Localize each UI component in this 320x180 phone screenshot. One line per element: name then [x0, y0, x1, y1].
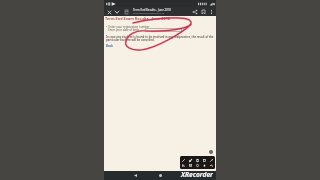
button[interactable]: More options: [207, 8, 215, 16]
button[interactable]: [145, 28, 182, 32]
button[interactable]: Back: [130, 171, 140, 180]
staticText: Enter your date of birth: [106, 28, 139, 32]
button[interactable]: Home: [155, 171, 165, 180]
button[interactable]: Highlighter: [188, 158, 193, 163]
button[interactable]: Recorder handle: [209, 150, 213, 154]
button[interactable]: Arrow: [209, 158, 214, 163]
button[interactable]: Pen: [181, 158, 186, 163]
button[interactable]: Circle: [195, 163, 200, 167]
staticText: examresults@university.ac.in: [133, 12, 165, 15]
button[interactable]: Rectangle: [195, 158, 200, 163]
staticText: In case any student is found to be invol…: [106, 35, 214, 42]
staticText: • Enter your registration number: [106, 25, 150, 29]
button[interactable]: Archive: [122, 8, 130, 16]
button[interactable]: Bookmark: [199, 8, 207, 16]
staticText: XRecorder: [181, 170, 213, 179]
staticText: Back: [106, 44, 114, 48]
button[interactable]: Fill: [202, 163, 207, 167]
button[interactable]: Back: [106, 44, 114, 48]
button[interactable]: Undo: [209, 163, 214, 167]
staticText: Term End Exam Results - June 2018: [105, 16, 170, 21]
button[interactable]: Expand: [113, 8, 121, 16]
staticText: Term End Results - June 2018: [133, 8, 171, 12]
button[interactable]: Text: [188, 163, 193, 167]
button[interactable]: Close: [105, 8, 113, 16]
button[interactable]: Rounded box: [202, 158, 207, 163]
button[interactable]: Blur: [181, 163, 186, 167]
button[interactable]: Share: [191, 8, 199, 16]
